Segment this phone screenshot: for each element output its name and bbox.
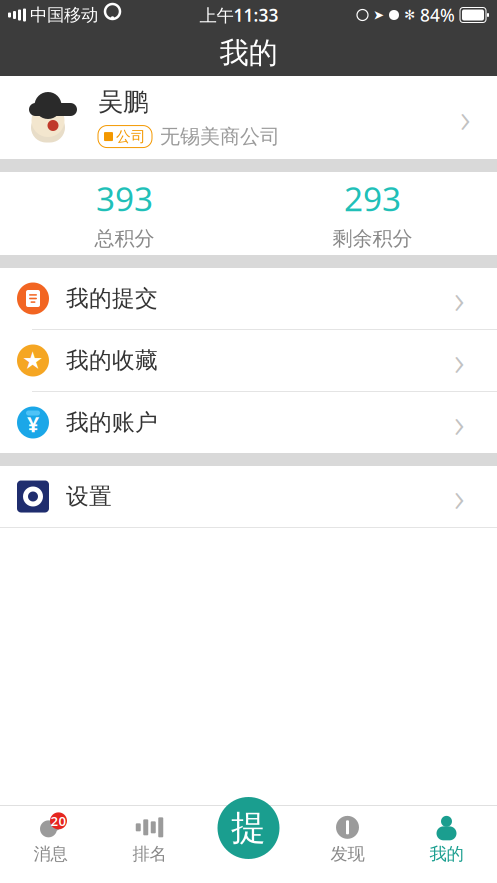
staticText: ➤	[373, 7, 384, 22]
staticText: 总积分	[94, 226, 154, 251]
button[interactable]: 我的提交	[0, 268, 497, 329]
staticText: 我的账户	[66, 409, 158, 436]
staticText: 剩余积分	[332, 226, 412, 251]
staticText: ›	[460, 91, 471, 144]
button[interactable]: 393	[0, 172, 248, 255]
staticText: ›	[454, 396, 465, 449]
staticText: 无锡美商公司	[160, 124, 280, 149]
button[interactable]: 排名	[100, 806, 199, 873]
staticText: 我的	[219, 35, 277, 71]
staticText: 公司	[116, 128, 146, 146]
button[interactable]: ★	[0, 330, 497, 391]
staticText: ¥	[27, 410, 39, 438]
staticText: 20	[50, 812, 66, 830]
staticText: 393	[96, 176, 153, 220]
staticText: ✻	[404, 7, 415, 22]
button[interactable]: 吴鹏	[0, 76, 497, 159]
button[interactable]: ¥	[0, 392, 497, 453]
staticText: 吴鹏	[98, 86, 148, 117]
staticText: ›	[454, 272, 465, 325]
staticText: 上午11:33	[199, 3, 278, 26]
staticText: 消息	[33, 843, 67, 865]
staticText: 293	[344, 176, 401, 220]
staticText: ›	[454, 334, 465, 387]
button[interactable]: 提	[217, 797, 279, 859]
staticText: 我的提交	[66, 285, 158, 312]
staticText: 发现	[330, 843, 364, 865]
staticText: 我的	[429, 843, 463, 865]
staticText: ★	[22, 347, 44, 374]
staticText: 排名	[132, 843, 166, 865]
staticText: 提	[231, 807, 266, 849]
button[interactable]: 293	[248, 172, 496, 255]
button[interactable]: 20	[1, 806, 100, 873]
button[interactable]: 我的	[397, 806, 496, 873]
staticText: 设置	[66, 483, 112, 510]
staticText: 我的收藏	[66, 347, 158, 374]
staticText: 84%	[420, 3, 455, 26]
button[interactable]: 发现	[298, 806, 397, 873]
staticText: 中国移动	[30, 4, 98, 26]
button[interactable]: 设置	[0, 466, 497, 527]
staticText: ›	[454, 470, 465, 523]
